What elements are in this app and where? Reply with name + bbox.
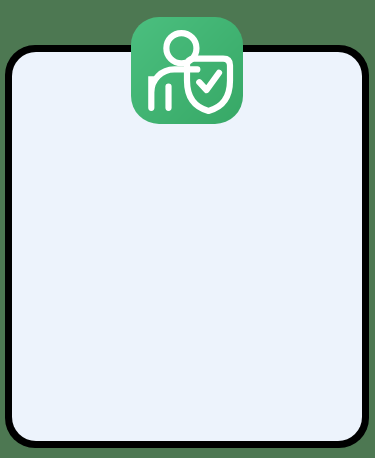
button[interactable]: Personal protection	[131, 17, 243, 124]
button[interactable]	[5, 45, 369, 448]
